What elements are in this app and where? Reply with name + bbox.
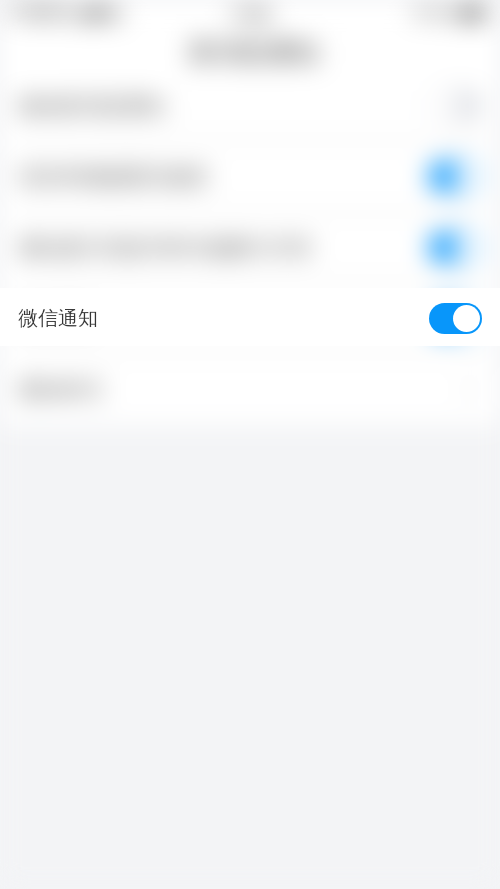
staticText: 中国移动 xyxy=(8,2,76,23)
button[interactable]: Toggle setting xyxy=(429,303,482,334)
staticText: 接收新消息通知 xyxy=(18,93,429,119)
button[interactable]: 语音和视频通话邀请 xyxy=(0,141,500,212)
staticText: 中国移动 xyxy=(8,2,76,23)
staticText: 94% xyxy=(432,4,459,22)
staticText: 通知样式 xyxy=(18,377,458,403)
button[interactable]: 通知显示消息详情与提醒方式等 xyxy=(0,212,500,283)
button[interactable]: Toggle setting xyxy=(429,161,482,192)
button[interactable]: 通知显示消息详情与提醒方式等 xyxy=(0,212,500,283)
button[interactable]: Toggle setting xyxy=(429,303,482,334)
staticText: 94% xyxy=(432,4,459,22)
staticText: 微信通知 xyxy=(18,306,429,331)
staticText: 通知样式 xyxy=(18,377,458,403)
button[interactable]: Toggle setting xyxy=(429,161,482,192)
button[interactable]: 接收新消息通知 xyxy=(0,70,500,141)
button[interactable]: Toggle setting xyxy=(429,90,482,121)
staticText: 语音和视频通话邀请 xyxy=(18,164,429,190)
button[interactable]: Toggle setting xyxy=(429,232,482,263)
staticText: 17:28 xyxy=(231,3,270,23)
staticText: 通知显示消息详情与提醒方式等 xyxy=(18,235,429,261)
button[interactable]: 通知样式 xyxy=(0,354,500,425)
staticText: 接收新消息通知 xyxy=(18,93,429,119)
staticText: 通知显示消息详情与提醒方式等 xyxy=(18,235,429,261)
staticText: 微信通知 xyxy=(18,306,429,331)
staticText: 5G xyxy=(102,3,122,23)
button[interactable]: 微信通知 xyxy=(0,283,500,354)
button[interactable]: 接收新消息通知 xyxy=(0,70,500,141)
staticText: 17:28 xyxy=(231,3,270,23)
button[interactable]: 微信通知 xyxy=(0,283,500,354)
staticText: 新消息通知 xyxy=(189,36,319,69)
staticText: 5G xyxy=(102,3,122,23)
staticText: 新消息通知 xyxy=(189,36,319,69)
staticText: 语音和视频通话邀请 xyxy=(18,164,429,190)
button[interactable]: 语音和视频通话邀请 xyxy=(0,141,500,212)
button[interactable]: Toggle setting xyxy=(429,232,482,263)
button[interactable]: Toggle setting xyxy=(429,90,482,121)
button[interactable]: 通知样式 xyxy=(0,354,500,425)
